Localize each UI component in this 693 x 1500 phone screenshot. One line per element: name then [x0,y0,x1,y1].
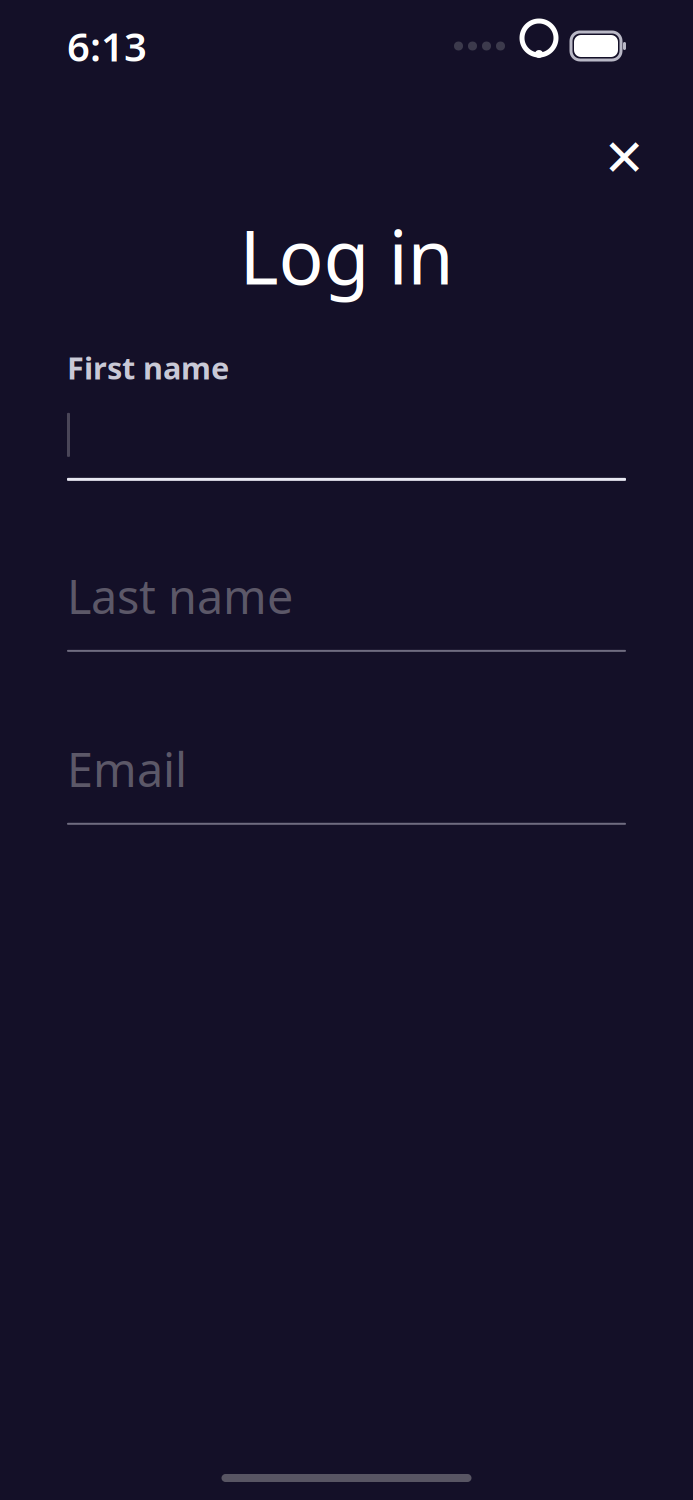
staticText: Log in [239,206,453,305]
button[interactable]: Close [592,126,656,190]
staticText: Last name [67,565,293,627]
staticText: First name [67,347,229,388]
staticText: 6:13 [67,19,147,72]
staticText: ✕ [603,129,645,187]
staticText: Email [67,738,187,800]
